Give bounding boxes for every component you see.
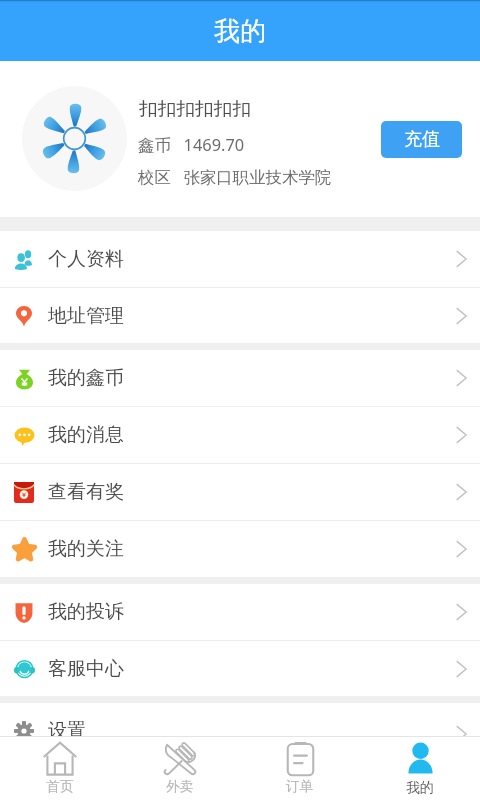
- staticText: 我的消息: [48, 423, 124, 447]
- staticText: 我的: [214, 15, 266, 48]
- button[interactable]: 设置: [0, 703, 480, 737]
- staticText: 个人资料: [48, 247, 124, 271]
- staticText: 我的关注: [48, 537, 124, 561]
- staticText: 客服中心: [48, 657, 124, 681]
- staticText: 查看有奖: [48, 480, 124, 504]
- button[interactable]: 客服中心: [0, 641, 480, 696]
- staticText: 我的: [406, 779, 434, 796]
- staticText: 地址管理: [48, 304, 124, 328]
- button[interactable]: 外卖: [120, 737, 240, 800]
- button[interactable]: 我的消息: [0, 407, 480, 463]
- button[interactable]: 我的关注: [0, 521, 480, 577]
- button[interactable]: 订单: [240, 737, 360, 800]
- button[interactable]: 查看有奖: [0, 464, 480, 520]
- button[interactable]: 我的鑫币: [0, 350, 480, 406]
- button[interactable]: 地址管理: [0, 288, 480, 343]
- staticText: 鑫币 1469.70: [138, 133, 245, 155]
- staticText: 扣扣扣扣扣扣: [139, 97, 252, 121]
- staticText: 设置: [48, 719, 86, 737]
- button[interactable]: 首页: [0, 737, 120, 800]
- staticText: 充值: [404, 128, 440, 151]
- staticText: 首页: [46, 778, 74, 795]
- button[interactable]: 个人资料: [0, 231, 480, 287]
- button[interactable]: 账户信息 扣扣扣扣扣扣: [0, 61, 480, 217]
- staticText: 我的鑫币: [48, 366, 124, 390]
- staticText: 订单: [286, 778, 314, 795]
- button[interactable]: 我的投诉: [0, 584, 480, 640]
- button[interactable]: 我的: [360, 737, 480, 800]
- button[interactable]: 充值: [381, 121, 462, 158]
- staticText: 外卖: [166, 778, 194, 795]
- staticText: 我的投诉: [48, 600, 124, 624]
- staticText: 校区 张家口职业技术学院: [138, 165, 332, 187]
